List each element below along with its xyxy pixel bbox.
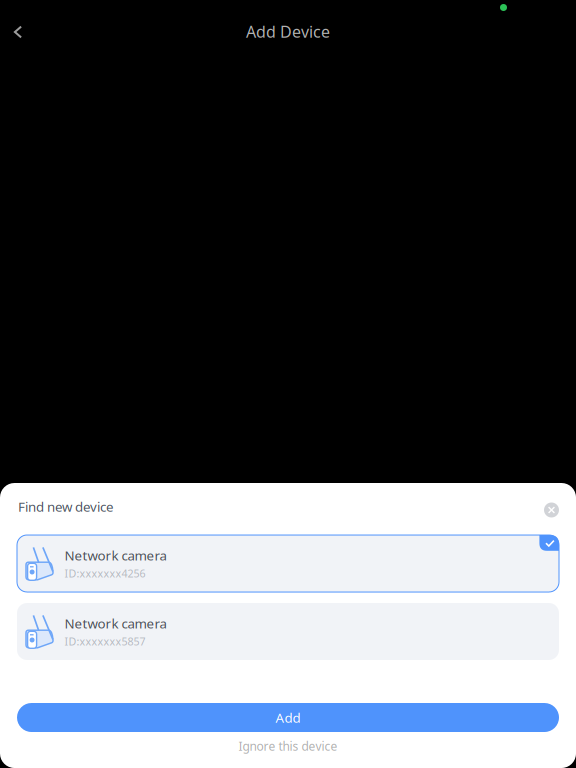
button[interactable]: Close (544, 502, 559, 517)
staticText: Find new device (18, 498, 114, 515)
staticText: Network camera (64, 615, 166, 632)
button[interactable]: Add (17, 703, 559, 732)
staticText: Network camera (64, 547, 166, 564)
staticText: ID:xxxxxxx4256 (64, 566, 145, 580)
button[interactable]: Network camera (17, 535, 559, 592)
staticText: ID:xxxxxxx5857 (64, 634, 145, 648)
button[interactable]: Network camera (17, 603, 559, 660)
staticText: Add Device (246, 21, 330, 42)
staticText: Add (275, 709, 300, 726)
button[interactable]: Ignore this device (17, 735, 559, 757)
button[interactable]: Back (1, 15, 35, 49)
staticText: Ignore this device (238, 738, 337, 754)
